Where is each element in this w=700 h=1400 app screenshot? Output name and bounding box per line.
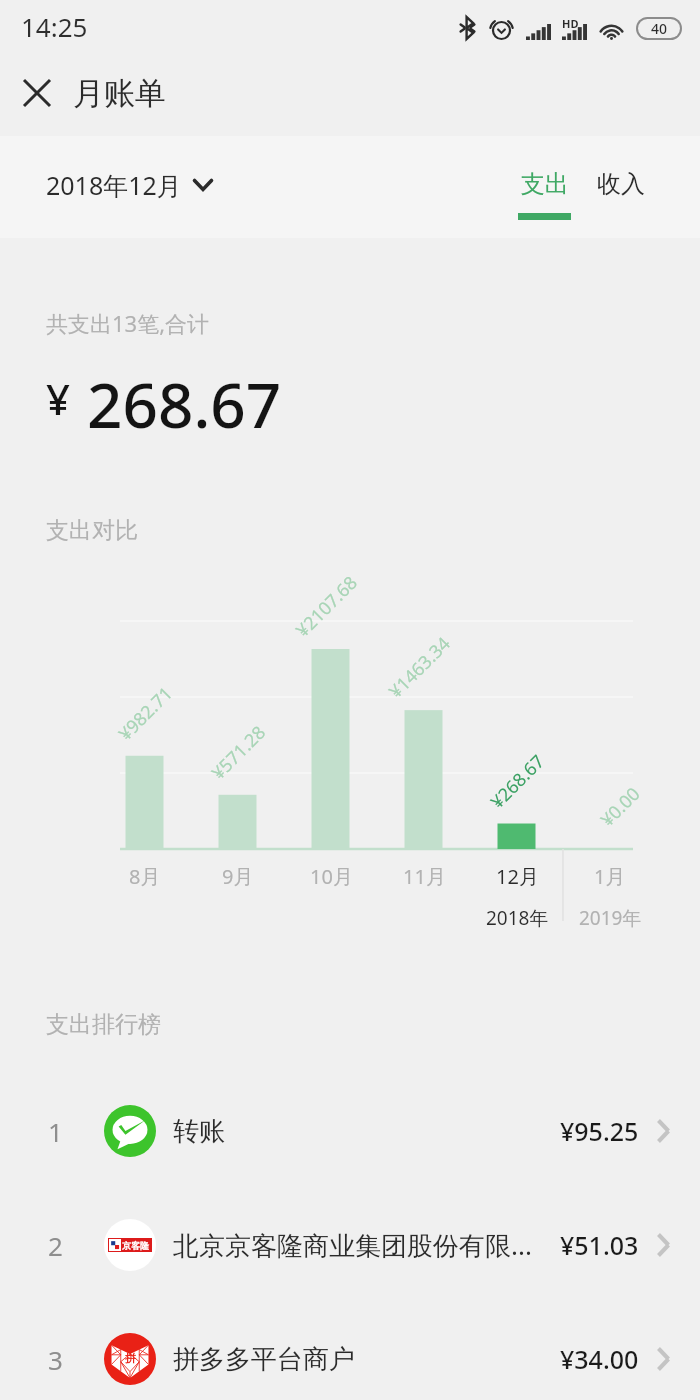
staticText: ¥ bbox=[46, 370, 71, 427]
staticText: 京客隆 bbox=[122, 1240, 149, 1251]
staticText: 12月 bbox=[496, 863, 539, 890]
staticText: ¥571.28 bbox=[206, 720, 271, 785]
staticText: ¥268.67 bbox=[485, 749, 550, 814]
staticText: 北京京客隆商业集团股份有限... bbox=[173, 1227, 552, 1263]
staticText: 1月 bbox=[594, 863, 626, 890]
staticText: 共支出13笔,合计 bbox=[46, 308, 210, 338]
button[interactable]: 2018年12月 bbox=[34, 158, 225, 212]
staticText: 14:25 bbox=[21, 9, 88, 44]
staticText: 转账 bbox=[173, 1115, 552, 1148]
staticText: 3 bbox=[48, 1342, 63, 1377]
button[interactable]: 收入 bbox=[586, 163, 655, 226]
staticText: 支出排行榜 bbox=[46, 1010, 161, 1039]
staticText: 2019年 bbox=[579, 905, 642, 931]
button[interactable]: 1 bbox=[0, 1074, 700, 1188]
staticText: HD bbox=[562, 16, 579, 31]
button[interactable]: 2 bbox=[0, 1188, 700, 1302]
staticText: 9月 bbox=[222, 863, 254, 890]
staticText: 40 bbox=[651, 19, 668, 38]
staticText: 1 bbox=[48, 1114, 63, 1149]
staticText: 拼多多平台商户 bbox=[173, 1343, 552, 1376]
staticText: 2018年 bbox=[486, 905, 549, 931]
staticText: ¥982.71 bbox=[113, 681, 178, 746]
staticText: ¥51.03 bbox=[560, 1228, 639, 1262]
staticText: 268.67 bbox=[87, 362, 282, 446]
staticText: ¥34.00 bbox=[560, 1342, 639, 1376]
button[interactable]: Close bbox=[11, 67, 63, 119]
staticText: 月账单 bbox=[73, 74, 166, 113]
button[interactable]: 3 bbox=[0, 1302, 700, 1400]
staticText: 11月 bbox=[403, 863, 446, 890]
staticText: 收入 bbox=[597, 169, 645, 199]
staticText: 8月 bbox=[129, 863, 161, 890]
staticText: 2 bbox=[48, 1228, 63, 1263]
staticText: ¥95.25 bbox=[560, 1114, 639, 1148]
staticText: ¥2107.68 bbox=[290, 570, 362, 642]
staticText: ¥0.00 bbox=[595, 781, 646, 832]
staticText: ¥1463.34 bbox=[383, 631, 455, 703]
button[interactable]: 支出 bbox=[510, 163, 579, 226]
staticText: 支出 bbox=[521, 169, 569, 199]
staticText: 2018年12月 bbox=[46, 168, 182, 202]
staticText: 10月 bbox=[310, 863, 353, 890]
staticText: 拼 bbox=[125, 1351, 136, 1365]
staticText: 支出对比 bbox=[46, 516, 138, 545]
